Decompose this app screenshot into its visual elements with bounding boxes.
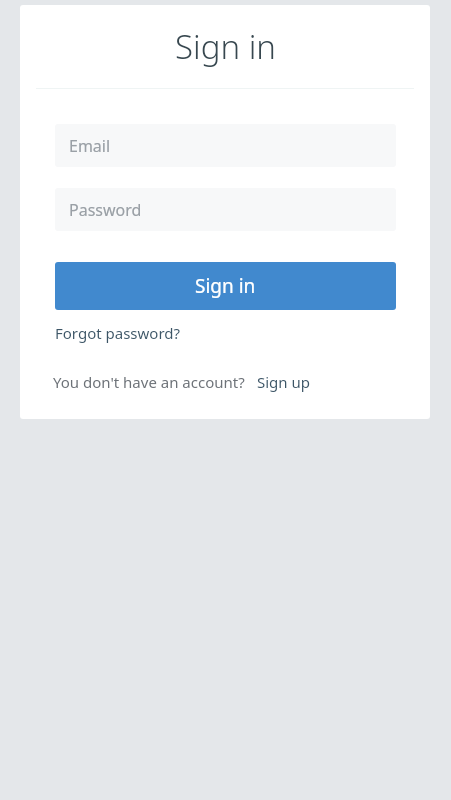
staticText: Sign in (195, 273, 256, 299)
button[interactable]: Sign in (55, 262, 396, 310)
button[interactable]: Sign up (257, 369, 310, 395)
button[interactable]: Password (55, 188, 396, 231)
staticText: You don't have an account? (53, 372, 245, 392)
staticText: Sign up (257, 372, 310, 392)
button[interactable]: Email (55, 124, 396, 167)
button[interactable]: Forgot password? (55, 320, 181, 346)
staticText: Sign in (175, 24, 276, 69)
staticText: Password (69, 199, 142, 221)
staticText: Email (69, 135, 111, 157)
staticText: Forgot password? (55, 323, 181, 343)
